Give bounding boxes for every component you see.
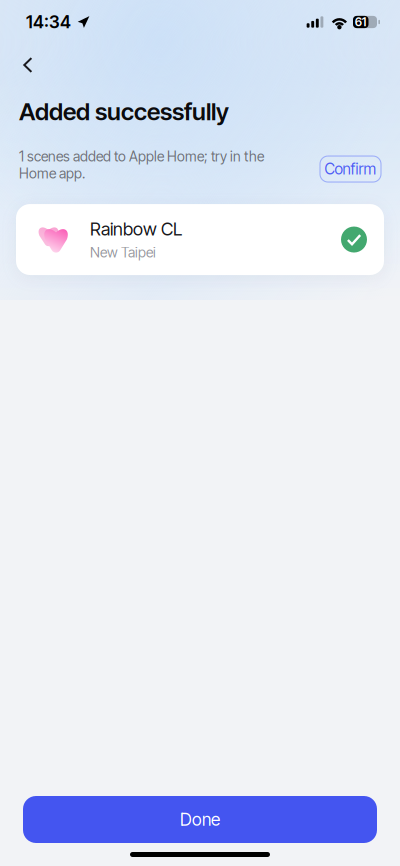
button[interactable]: Confirm [320,156,381,182]
button[interactable]: Done [23,796,377,843]
staticText: 14:34 [26,11,71,32]
staticText: Rainbow CL [90,218,182,240]
button[interactable]: Back [0,44,46,84]
staticText: 1 scenes added to Apple Home; try in the… [19,148,264,182]
staticText: Added successfully [19,97,229,126]
staticText: 61 [355,15,367,29]
staticText: Done [180,809,220,830]
staticText: Confirm [324,160,376,178]
button[interactable]: Rainbow CL [16,204,384,275]
staticText: New Taipei [90,244,156,261]
